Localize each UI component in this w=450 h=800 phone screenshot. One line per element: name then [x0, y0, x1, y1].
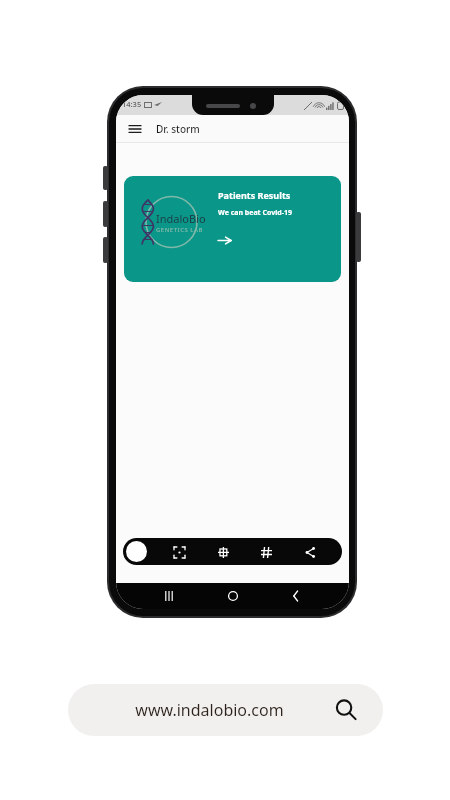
button[interactable]: Hashtag: [255, 541, 277, 563]
button[interactable]: Color: [126, 541, 147, 562]
staticText: www.indalobio.com: [88, 699, 331, 721]
button[interactable]: Menu: [125, 119, 145, 139]
staticText: We can beat Covid-19: [218, 208, 292, 218]
button[interactable]: Search: [331, 695, 361, 725]
button[interactable]: Home: [222, 585, 244, 607]
button[interactable]: www.indalobio.com: [68, 684, 383, 736]
button[interactable]: Open patients results: [218, 230, 238, 250]
staticText: 14:35: [122, 99, 142, 109]
button[interactable]: Scan: [168, 541, 190, 563]
button[interactable]: Share: [299, 541, 321, 563]
staticText: IndaloBio: [156, 211, 206, 226]
button[interactable]: IndaloBio: [124, 176, 341, 282]
staticText: Dr. storm: [156, 122, 200, 136]
button[interactable]: Recents: [158, 585, 180, 607]
staticText: GENETICS LAB: [156, 226, 203, 234]
staticText: Patients Results: [218, 189, 291, 201]
button[interactable]: Back: [285, 585, 307, 607]
button[interactable]: Sticker: [212, 541, 234, 563]
